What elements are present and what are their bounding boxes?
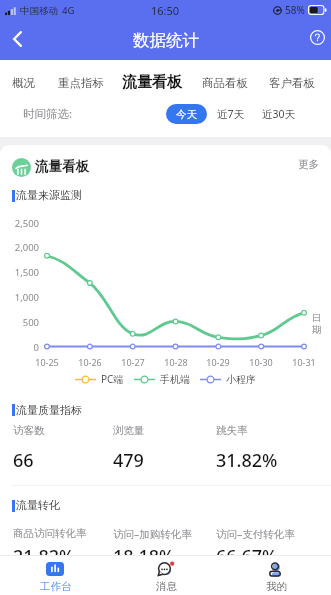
staticText: 1,000	[0, 291, 39, 304]
staticText: 数据统计	[133, 30, 199, 51]
staticText: 流量看板	[35, 158, 89, 175]
staticText: 期	[312, 324, 322, 336]
button[interactable]: 重点指标	[45, 60, 117, 105]
staticText: 10-25	[30, 356, 64, 368]
staticText: 我的	[266, 580, 287, 593]
button[interactable]: 工作台	[0, 556, 111, 595]
staticText: 近7天	[217, 107, 245, 121]
button[interactable]: 客户看板	[256, 60, 328, 105]
staticText: 0	[0, 341, 39, 354]
staticText: 浏览量	[113, 424, 145, 437]
staticText: 10-29	[201, 356, 235, 368]
staticText: 18.18%	[113, 544, 175, 555]
staticText: 流量来源监测	[16, 188, 82, 202]
staticText: 概况	[12, 76, 35, 90]
staticText: 2,500	[0, 217, 39, 230]
button[interactable]: 商品看板	[189, 60, 261, 105]
staticText: PC端	[101, 372, 124, 386]
staticText: 流量看板	[122, 73, 182, 92]
staticText: 重点指标	[58, 76, 104, 90]
staticText: 4G	[62, 4, 75, 17]
staticText: 商品看板	[202, 76, 248, 90]
staticText: 10-26	[73, 356, 107, 368]
staticText: 更多	[298, 158, 319, 171]
staticText: 客户看板	[269, 76, 315, 90]
staticText: 66.67%	[216, 544, 278, 555]
staticText: 10-28	[159, 356, 193, 368]
button[interactable]: 今天	[166, 104, 207, 124]
staticText: 31.82%	[216, 448, 278, 473]
staticText: 访问–支付转化率	[216, 527, 295, 541]
staticText: 10-27	[116, 356, 150, 368]
button[interactable]: 流量看板	[116, 60, 188, 105]
button[interactable]: Help	[303, 23, 331, 51]
staticText: 流量转化	[16, 498, 60, 512]
staticText: 跳失率	[216, 424, 248, 437]
button[interactable]: Back	[3, 25, 31, 53]
staticText: 1,500	[0, 266, 39, 279]
button[interactable]: 我的	[221, 556, 331, 595]
staticText: 小程序	[226, 373, 256, 386]
staticText: 500	[0, 316, 39, 329]
staticText: 消息	[156, 580, 177, 593]
staticText: 访客数	[13, 424, 45, 437]
staticText: 近30天	[262, 107, 296, 121]
staticText: 2,000	[0, 241, 39, 254]
staticText: 今天	[176, 108, 197, 121]
staticText: 工作台	[40, 580, 72, 593]
button[interactable]: 概况	[0, 60, 59, 105]
staticText: 10-30	[244, 356, 278, 368]
staticText: 66	[13, 448, 34, 473]
button[interactable]: 消息	[111, 556, 221, 595]
staticText: 58%	[285, 3, 305, 17]
button[interactable]: 近7天	[217, 104, 245, 124]
staticText: 手机端	[160, 373, 190, 386]
staticText: 16:50	[151, 3, 180, 18]
staticText: 商品访问转化率	[13, 527, 87, 540]
staticText: 中国移动	[20, 5, 58, 17]
staticText: 访问–加购转化率	[113, 527, 192, 541]
button[interactable]: 近30天	[262, 104, 296, 124]
staticText: 479	[113, 448, 144, 473]
staticText: 21.82%	[13, 544, 75, 555]
staticText: 流量质量指标	[16, 403, 82, 417]
staticText: 10-31	[287, 356, 321, 368]
button[interactable]: 更多	[298, 158, 319, 171]
staticText: 时间筛选:	[23, 106, 73, 122]
staticText: 日	[312, 312, 322, 324]
